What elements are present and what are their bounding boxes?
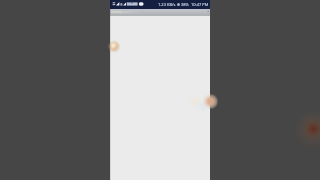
staticText: 1.23 KB/s bbox=[158, 2, 176, 7]
button[interactable]: More options bbox=[206, 10, 209, 13]
staticText: 38% bbox=[181, 2, 189, 7]
staticText: 10:47 PM bbox=[191, 2, 209, 7]
button[interactable]: More options bbox=[110, 9, 210, 16]
